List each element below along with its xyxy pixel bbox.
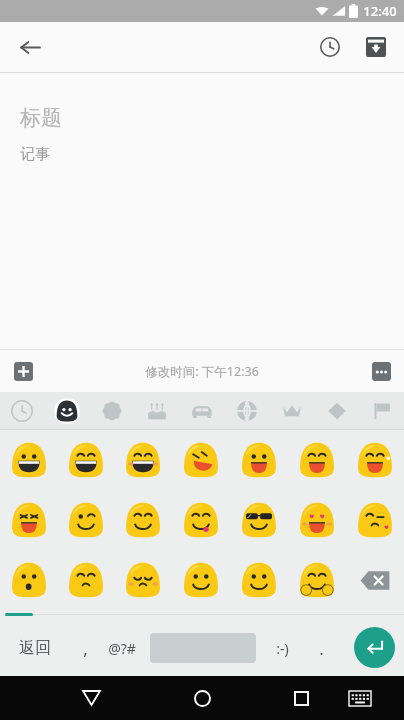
button[interactable]: Enter <box>354 627 395 668</box>
button[interactable]: 返回 <box>6 626 64 670</box>
button[interactable]: Switch keyboard <box>338 676 382 720</box>
staticText: . <box>319 637 324 660</box>
button[interactable]: Emoji 17 <box>114 550 172 610</box>
staticText: 记事 <box>20 145 50 164</box>
button[interactable]: Flags <box>359 392 404 430</box>
button[interactable]: Recent <box>0 392 44 430</box>
button[interactable]: Nature <box>89 392 134 430</box>
button[interactable]: Emoji 10 <box>114 490 172 550</box>
staticText: :-) <box>276 639 289 658</box>
button[interactable]: Emoji 5 <box>230 430 288 490</box>
button[interactable]: Emoji 3 <box>114 430 172 490</box>
button[interactable]: Emoji 6 <box>288 430 346 490</box>
button[interactable]: Smileys <box>44 392 89 430</box>
button[interactable]: Backspace <box>346 550 404 610</box>
button[interactable]: Emoji 12 <box>230 490 288 550</box>
button[interactable]: Emoji 16 <box>57 550 114 610</box>
button[interactable]: Objects <box>269 392 314 430</box>
button[interactable]: Symbols <box>314 392 359 430</box>
button[interactable]: Emoji 8 <box>0 490 57 550</box>
button[interactable]: Reminder <box>310 27 350 67</box>
button[interactable]: Emoji 14 <box>346 490 404 550</box>
button[interactable]: Hide keyboard <box>68 676 114 720</box>
button[interactable]: :-) <box>264 626 300 670</box>
button[interactable]: Emoji 7 <box>346 430 404 490</box>
button[interactable]: @?# <box>100 626 144 670</box>
staticText: 12:40 <box>363 2 397 20</box>
button[interactable]: Food <box>134 392 179 430</box>
button[interactable]: Emoji 2 <box>57 430 114 490</box>
button[interactable]: Emoji 19 <box>230 550 288 610</box>
staticText: 标题 <box>20 105 62 131</box>
button[interactable]: , <box>68 626 102 670</box>
button[interactable]: Home <box>179 676 225 720</box>
staticText: @?# <box>108 639 136 658</box>
button[interactable]: Archive <box>356 27 396 67</box>
button[interactable]: Emoji 13 <box>288 490 346 550</box>
button[interactable]: More options <box>366 356 396 386</box>
button[interactable]: Recents <box>278 676 324 720</box>
button[interactable]: . <box>306 626 336 670</box>
button[interactable]: Emoji 15 <box>0 550 57 610</box>
button[interactable]: Emoji 11 <box>172 490 230 550</box>
button[interactable]: Travel <box>179 392 224 430</box>
staticText: , <box>83 637 88 660</box>
button[interactable]: Emoji 4 <box>172 430 230 490</box>
button[interactable]: Back <box>10 27 50 67</box>
button[interactable]: Emoji 20 <box>288 550 346 610</box>
staticText: 修改时间: 下午12:36 <box>145 363 259 380</box>
button[interactable]: Emoji 9 <box>57 490 114 550</box>
button[interactable]: Activity <box>224 392 269 430</box>
button[interactable]: Add <box>8 356 38 386</box>
staticText: 返回 <box>19 638 51 658</box>
button[interactable]: Emoji 18 <box>172 550 230 610</box>
button[interactable]: Emoji 1 <box>0 430 57 490</box>
